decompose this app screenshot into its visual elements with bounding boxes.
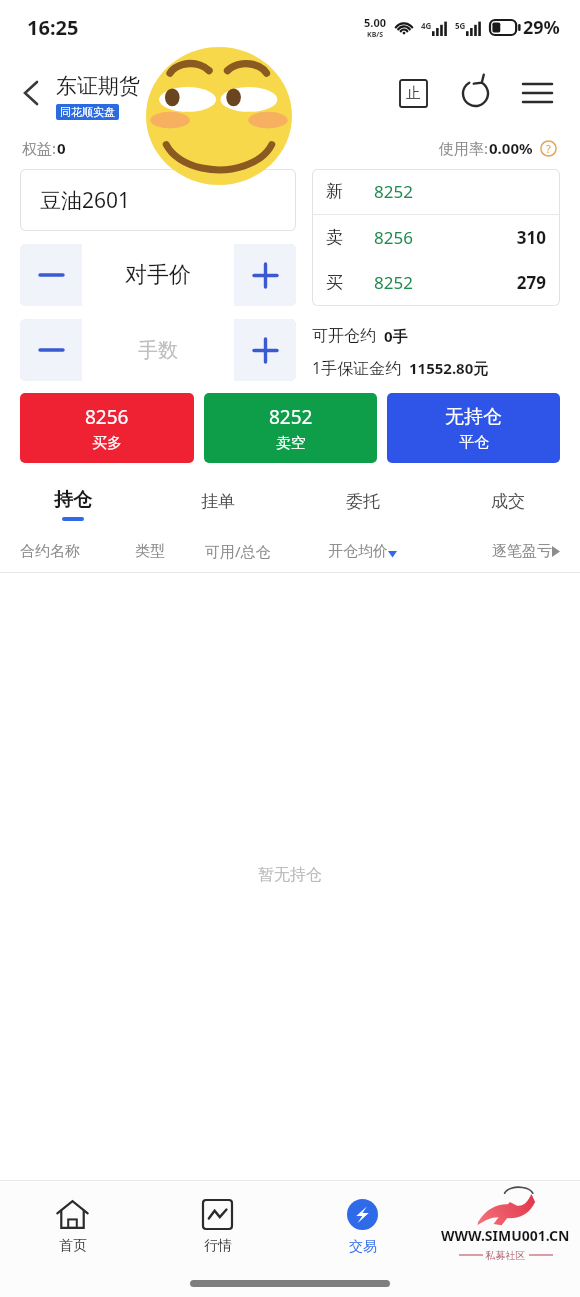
staticText: 买多 <box>92 434 122 453</box>
staticText: 买 <box>326 272 374 293</box>
staticText: 8252 <box>374 180 492 203</box>
staticText: 平仓 <box>459 433 489 452</box>
staticText: 委托 <box>346 491 380 512</box>
button[interactable]: 同花顺实盘 <box>60 105 115 119</box>
button[interactable]: Menu <box>516 72 558 114</box>
staticText: 权益: <box>22 138 57 158</box>
staticText: 同花顺实盘 <box>60 105 115 119</box>
staticText: 开仓均价 <box>328 542 388 561</box>
button[interactable]: 8252 <box>204 393 377 463</box>
staticText: 8252 <box>374 271 492 294</box>
staticText: 合约名称 <box>20 542 135 561</box>
staticText: 手数 <box>138 338 178 363</box>
staticText: 交易 <box>349 1238 377 1256</box>
staticText: 11552.80元 <box>409 358 489 378</box>
button[interactable]: Increase <box>234 244 296 306</box>
button[interactable]: Stop loss <box>392 72 434 114</box>
button[interactable]: 挂单 <box>145 479 290 529</box>
staticText: 挂单 <box>201 491 235 512</box>
staticText: 279 <box>492 271 546 294</box>
staticText: 310 <box>492 226 546 249</box>
staticText: 持仓 <box>54 488 92 512</box>
button[interactable]: Decrease <box>20 319 82 381</box>
staticText: 0.00% <box>489 138 533 158</box>
button[interactable]: 8256 <box>20 393 194 463</box>
button[interactable]: 交易 <box>290 1180 435 1274</box>
staticText: KB/S <box>367 30 384 40</box>
button[interactable]: 新 <box>326 169 546 214</box>
button[interactable]: 豆油2601 <box>20 169 296 231</box>
button[interactable]: Decrease <box>20 244 82 306</box>
staticText: 16:25 <box>27 14 79 41</box>
button[interactable]: 卖 <box>326 215 546 260</box>
staticText: 无持仓 <box>445 405 502 429</box>
staticText: WWW.SIMU001.CN <box>441 1226 570 1245</box>
staticText: 8256 <box>85 404 129 430</box>
staticText: 类型 <box>135 542 205 561</box>
button[interactable]: 委托 <box>290 479 435 529</box>
staticText: 29% <box>523 15 560 40</box>
button[interactable]: 手数 <box>82 319 234 381</box>
staticText: 8252 <box>269 404 313 430</box>
staticText: 私募社区 <box>483 1248 529 1262</box>
staticText: 8256 <box>374 226 492 249</box>
staticText: 行情 <box>204 1237 232 1255</box>
button[interactable]: 成交 <box>435 479 580 529</box>
button[interactable]: 买 <box>326 260 546 305</box>
staticText: 成交 <box>491 491 525 512</box>
staticText: 止 <box>406 84 421 103</box>
staticText: 可开仓约 <box>312 326 376 346</box>
button[interactable]: 持仓 <box>0 479 145 529</box>
staticText: 使用率: <box>439 138 489 158</box>
staticText: 0 <box>57 138 66 158</box>
staticText: 1手保证金约 <box>312 357 402 379</box>
button[interactable]: Refresh <box>454 72 496 114</box>
staticText: 卖空 <box>276 434 306 453</box>
staticText: 新 <box>326 181 374 202</box>
staticText: 豆油2601 <box>40 186 131 215</box>
button[interactable]: Back <box>8 71 52 115</box>
staticText: ? <box>546 141 551 156</box>
staticText: 东证期货 <box>56 73 140 99</box>
staticText: 首页 <box>59 1237 87 1255</box>
button[interactable]: 首页 <box>0 1180 145 1274</box>
staticText: 5G <box>455 20 466 31</box>
button[interactable]: Help <box>539 139 558 158</box>
staticText: 逐笔盈亏 <box>492 542 552 561</box>
staticText: 卖 <box>326 227 374 248</box>
button[interactable]: 对手价 <box>82 244 234 306</box>
button[interactable]: 无持仓 <box>387 393 560 463</box>
staticText: 5.00 <box>364 15 386 30</box>
staticText: 4G <box>421 20 432 31</box>
staticText: 对手价 <box>125 261 191 289</box>
staticText: 暂无持仓 <box>258 865 322 885</box>
button[interactable]: 行情 <box>145 1180 290 1274</box>
button[interactable]: Increase <box>234 319 296 381</box>
staticText: 可用/总仓 <box>205 541 328 561</box>
staticText: 0手 <box>384 326 408 346</box>
